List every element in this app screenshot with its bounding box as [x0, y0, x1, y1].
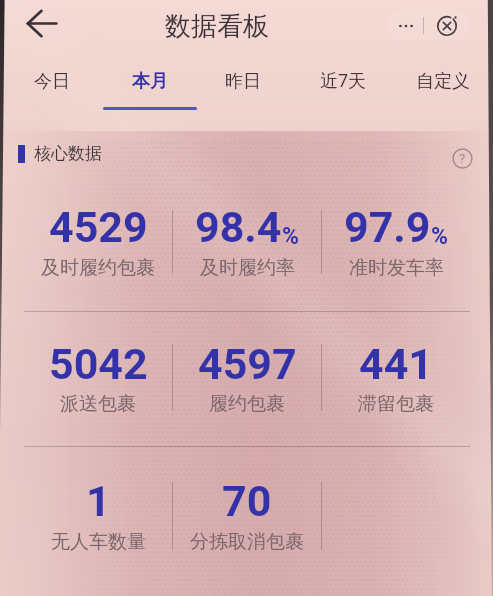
staticText: 1: [86, 476, 111, 520]
staticText: 核心数据: [34, 143, 102, 164]
staticText: 4529: [49, 202, 148, 246]
button[interactable]: 97.9: [322, 202, 470, 246]
staticText: 98.4: [195, 202, 282, 246]
staticText: 昨日: [225, 70, 261, 93]
staticText: 滞留包裹: [358, 392, 434, 416]
button[interactable]: 1: [24, 476, 172, 520]
staticText: 近7天: [320, 70, 367, 93]
button[interactable]: More options: [388, 10, 423, 41]
staticText: 自定义: [416, 70, 470, 93]
button[interactable]: 近7天: [295, 60, 391, 104]
button[interactable]: 4597: [173, 339, 321, 383]
button[interactable]: Close: [424, 10, 469, 41]
staticText: 准时发车率: [349, 256, 444, 280]
staticText: 4597: [198, 339, 297, 383]
staticText: 441: [359, 339, 434, 383]
staticText: 分拣取消包裹: [190, 530, 304, 554]
staticText: 派送包裹: [60, 392, 136, 416]
staticText: 70: [222, 476, 272, 520]
staticText: 及时履约包裹: [41, 256, 155, 280]
staticText: 今日: [34, 70, 70, 93]
staticText: 履约包裹: [209, 392, 285, 416]
staticText: 97.9: [344, 202, 431, 246]
staticText: 无人车数量: [51, 530, 146, 554]
staticText: 及时履约率: [200, 256, 295, 280]
button[interactable]: Help: [450, 146, 475, 171]
staticText: %: [431, 223, 448, 250]
staticText: 5042: [49, 339, 148, 383]
staticText: ?: [459, 151, 466, 166]
button[interactable]: 98.4: [173, 202, 321, 246]
button[interactable]: 70: [173, 476, 321, 520]
button[interactable]: 441: [322, 339, 470, 383]
staticText: %: [282, 223, 299, 250]
button[interactable]: 昨日: [195, 60, 291, 104]
staticText: 本月: [132, 70, 168, 93]
staticText: 数据看板: [165, 10, 269, 43]
button[interactable]: Back: [18, 0, 64, 46]
button[interactable]: 4529: [24, 202, 172, 246]
button[interactable]: 5042: [24, 339, 172, 383]
button[interactable]: 今日: [4, 60, 100, 104]
button[interactable]: 本月: [102, 60, 198, 104]
button[interactable]: 自定义: [395, 60, 491, 104]
